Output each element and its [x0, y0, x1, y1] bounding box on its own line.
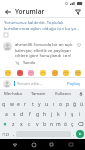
button[interactable]: d	[18, 109, 26, 119]
staticText: c	[28, 121, 31, 128]
staticText: a	[5, 111, 8, 118]
button[interactable]: i	[76, 109, 83, 119]
button[interactable]: p	[64, 99, 71, 109]
button[interactable]: Emoji	[62, 69, 69, 76]
staticText: s	[13, 111, 16, 118]
button[interactable]: x	[17, 119, 25, 129]
staticText: ö	[64, 121, 68, 128]
button[interactable]: Emoji	[4, 69, 11, 76]
staticText: v	[36, 121, 39, 128]
button[interactable]: h	[41, 109, 48, 119]
button[interactable]: z	[9, 119, 17, 129]
staticText: .	[73, 131, 75, 137]
button[interactable]: Paylaş	[66, 81, 82, 87]
button[interactable]: Geri	[3, 7, 12, 16]
button[interactable]: Sil	[76, 119, 85, 129]
button[interactable]: Profil	[3, 80, 11, 88]
button[interactable]: Emoji	[16, 69, 23, 76]
staticText: Paylaş	[67, 81, 81, 87]
button[interactable]: Son kullanılanlar	[47, 140, 56, 149]
button[interactable]: t	[29, 99, 36, 109]
button[interactable]: f	[26, 109, 34, 119]
button[interactable]: k	[55, 109, 62, 119]
button[interactable]: l	[62, 109, 69, 119]
button[interactable]: u	[43, 99, 50, 109]
button[interactable]: v	[33, 119, 41, 129]
staticText: z	[12, 121, 15, 128]
staticText: k	[57, 111, 60, 118]
button[interactable]: Virgül	[11, 130, 16, 138]
button[interactable]: q	[0, 99, 8, 109]
button[interactable]: Tamam	[26, 89, 51, 99]
staticText: Yorumunuz kaldırıldı. Topluluk kuralları…	[4, 20, 81, 31]
staticText: Kullanıcı	[55, 91, 72, 97]
button[interactable]: m	[55, 119, 62, 129]
staticText: Yorumlar	[15, 7, 45, 16]
button[interactable]: ö	[62, 119, 69, 129]
button[interactable]: g	[34, 109, 41, 119]
staticText: ahmet06 Sonunda bir an açık kalmıştır, e…	[15, 42, 74, 58]
button[interactable]: j	[48, 109, 55, 119]
staticText: Merhaba	[4, 91, 22, 97]
staticText: d	[20, 111, 24, 118]
button[interactable]: Nokta	[71, 130, 76, 138]
button[interactable]: Kullanıcı	[51, 89, 76, 99]
button[interactable]: a	[2, 109, 10, 119]
staticText: n	[50, 121, 54, 128]
staticText: ş	[71, 111, 74, 118]
button[interactable]: Emoji	[51, 69, 58, 76]
staticText: i	[79, 111, 81, 118]
button[interactable]: n	[48, 119, 55, 129]
button[interactable]: y	[36, 99, 43, 109]
staticText: ?123	[2, 132, 10, 137]
button[interactable]: ğ	[71, 99, 78, 109]
staticText: y	[38, 101, 41, 108]
staticText: g	[36, 111, 40, 118]
button[interactable]: ş	[69, 109, 76, 119]
button[interactable]: Klavye gizle	[66, 140, 75, 149]
button[interactable]: Ana ekran	[29, 140, 38, 149]
button[interactable]: Emoji	[74, 69, 81, 76]
button[interactable]: ?123	[1, 130, 11, 138]
staticText: 1g	[15, 60, 20, 65]
button[interactable]: b	[41, 119, 48, 129]
button[interactable]: Filtre	[73, 7, 82, 16]
button[interactable]: c	[25, 119, 33, 129]
staticText: ğ	[73, 101, 77, 108]
staticText: e	[17, 101, 20, 108]
button[interactable]: s	[10, 109, 18, 119]
button[interactable]: o	[57, 99, 64, 109]
button[interactable]: Beğen	[76, 42, 82, 48]
staticText: u	[45, 101, 49, 108]
staticText: x	[20, 121, 23, 128]
button[interactable]: Gönder	[76, 130, 84, 138]
button[interactable]: ahmet06 Sonunda bir an açık kalmıştır, e…	[0, 39, 85, 65]
button[interactable]: Shift	[0, 119, 9, 129]
staticText: f	[29, 111, 31, 118]
staticText: m	[56, 121, 61, 128]
button[interactable]: e	[15, 99, 22, 109]
button[interactable]: Merhaba	[0, 89, 26, 99]
button[interactable]: Geri	[10, 140, 19, 149]
button[interactable]: Emoji	[27, 69, 34, 76]
staticText: r	[24, 101, 27, 108]
staticText: Tamam	[31, 91, 46, 97]
button[interactable]: ç	[69, 119, 76, 129]
staticText: ü	[80, 101, 84, 108]
staticText: ç	[71, 121, 74, 128]
button[interactable]: Yanıtla	[23, 60, 35, 65]
button[interactable]: ı	[50, 99, 57, 109]
button[interactable]: w	[8, 99, 15, 109]
staticText: ı	[53, 101, 55, 108]
button[interactable]: ü	[78, 99, 85, 109]
button[interactable]: Emoji	[39, 69, 46, 76]
staticText: o	[59, 101, 63, 108]
staticText: Yorum ekle...	[17, 81, 66, 87]
button[interactable]: r	[22, 99, 29, 109]
staticText: w	[10, 101, 14, 108]
button[interactable]: Sesli giriş	[76, 89, 85, 99]
staticText: h	[43, 111, 47, 118]
staticText: ,	[13, 131, 15, 137]
staticText: l	[65, 111, 67, 118]
